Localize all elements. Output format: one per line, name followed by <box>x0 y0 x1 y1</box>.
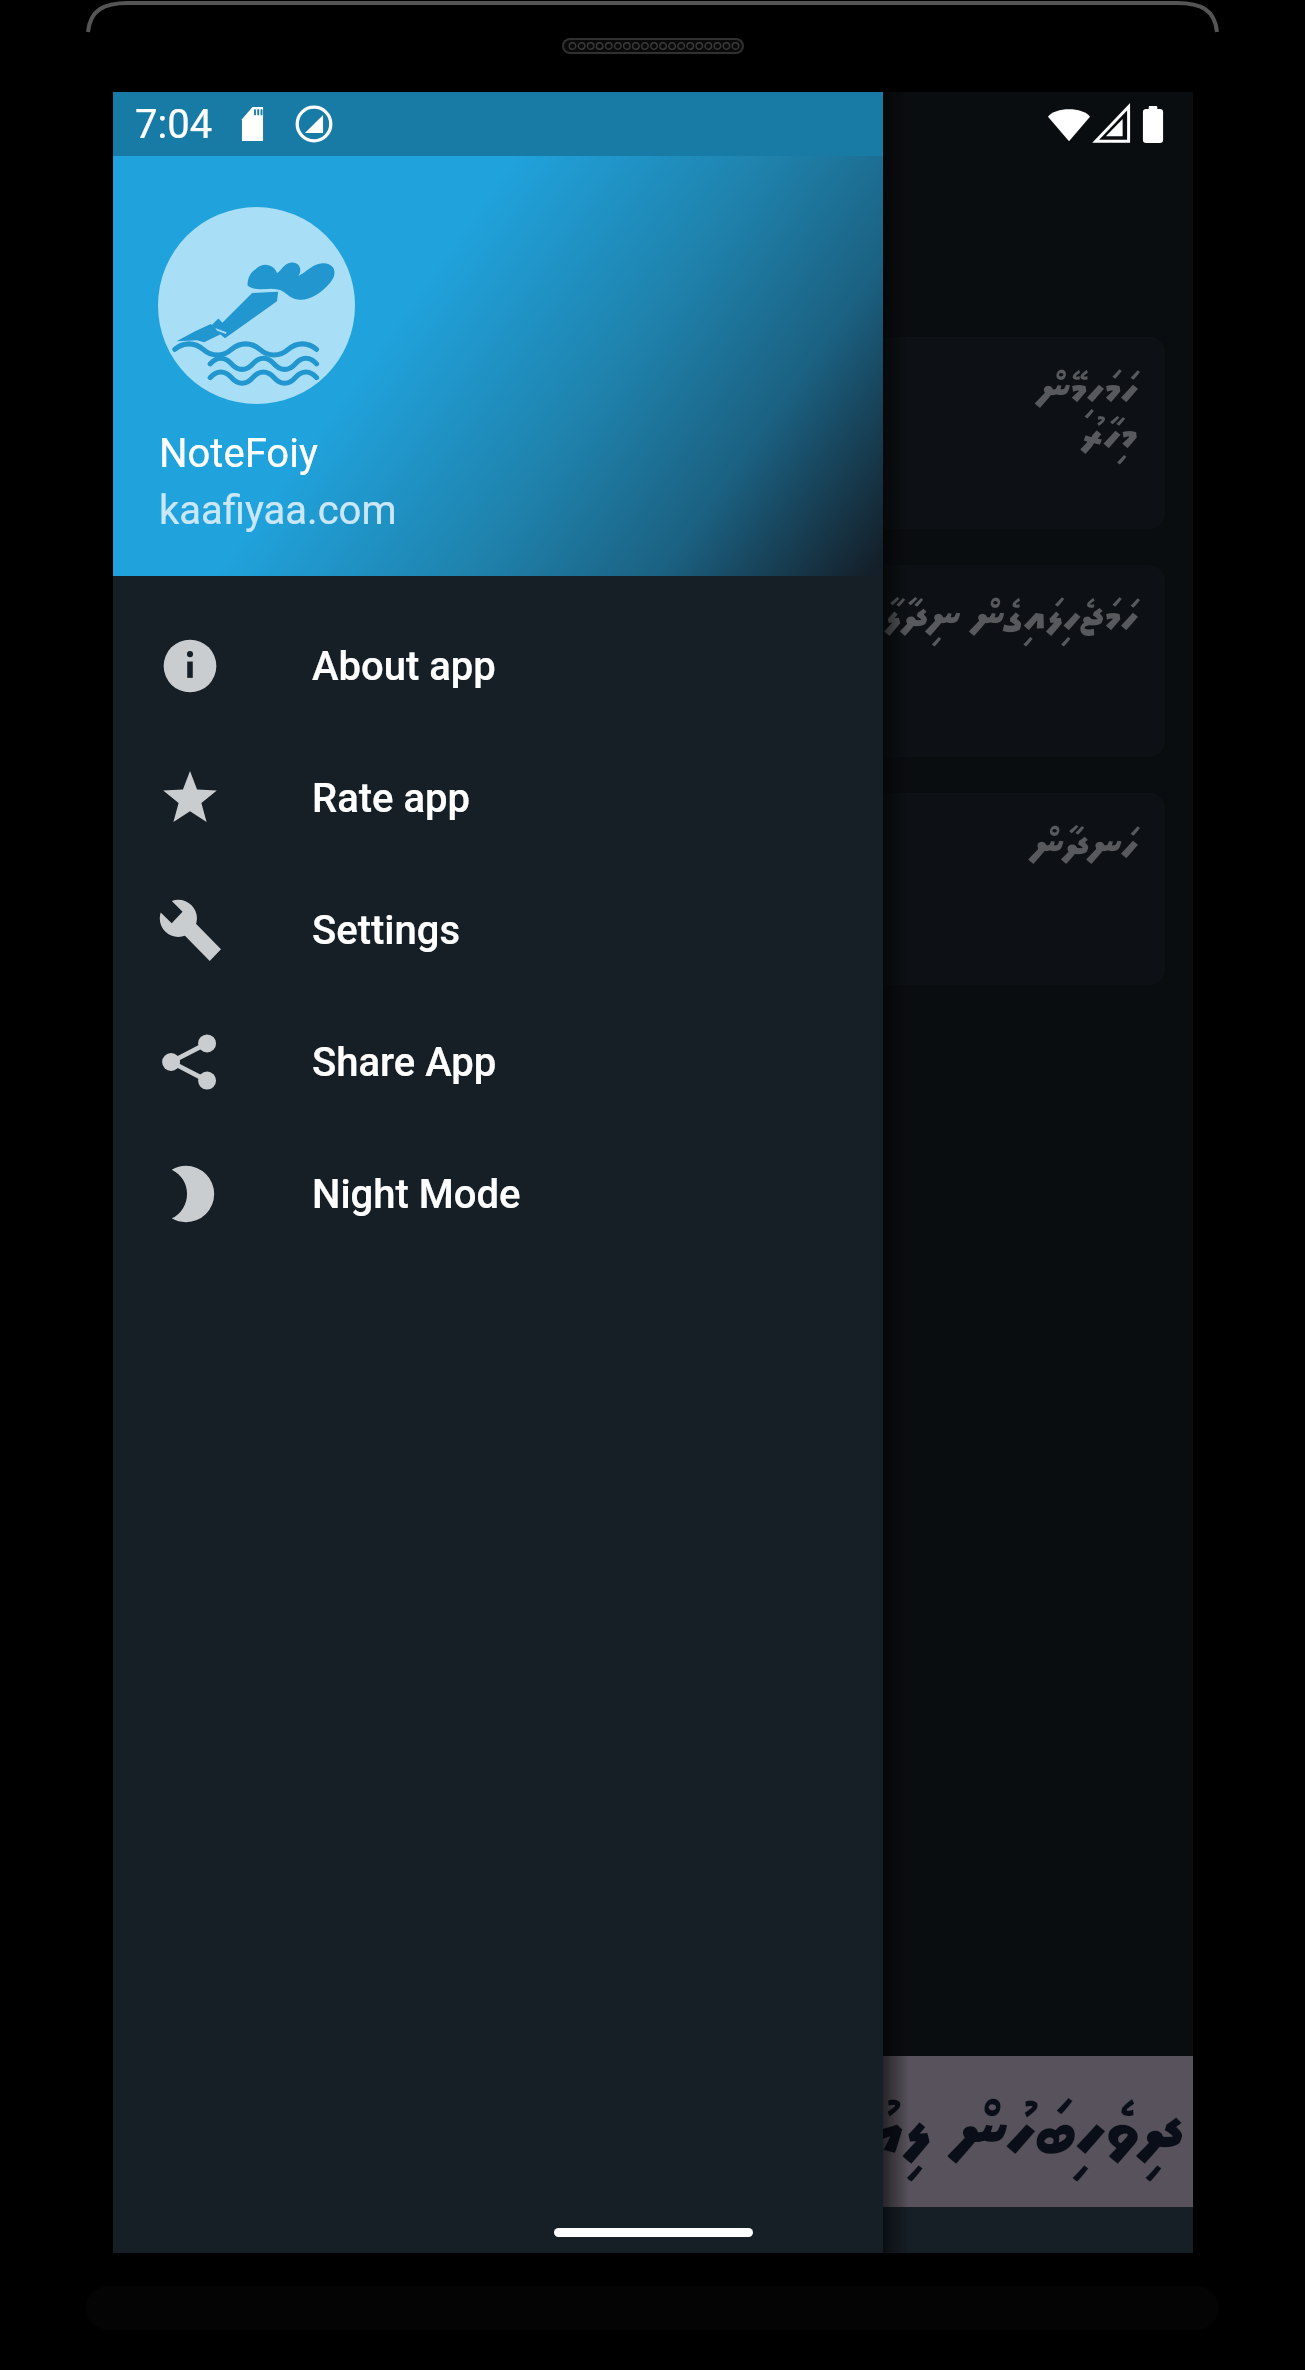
button[interactable]: Share App <box>113 996 883 1128</box>
staticText: Settings <box>312 907 461 954</box>
button[interactable]: Dhivehi keyboard toolbar <box>113 2056 1193 2207</box>
staticText: ހަމަޖެހިލައިގެން ނިދާލާ <box>169 583 1137 652</box>
button[interactable]: Note <box>141 793 1165 985</box>
staticText: NoteFoiy <box>159 430 318 477</box>
staticText: kaafiyaa.com <box>159 487 397 534</box>
staticText: ހަނދާން <box>169 811 1137 880</box>
staticText: About app <box>312 643 496 690</box>
staticText: Share App <box>312 1039 497 1086</box>
staticText: 7:04 <box>135 101 213 148</box>
staticText: Night Mode <box>312 1171 521 1218</box>
staticText: Rate app <box>312 775 470 822</box>
button[interactable]: NoteFoiy app logo <box>158 207 355 404</box>
staticText: ދިވެހިބަހުން ލިޔުއްވާ <box>782 2074 1183 2190</box>
button[interactable]: Note <box>141 565 1165 757</box>
button[interactable]: Rate app <box>113 732 883 864</box>
button[interactable]: Night Mode <box>113 1128 883 1260</box>
button[interactable]: Note <box>141 337 1165 529</box>
button[interactable]: About app <box>113 600 883 732</box>
staticText: ހަމަހިމޭން މިހާރު <box>169 355 1137 469</box>
button[interactable]: Settings <box>113 864 883 996</box>
